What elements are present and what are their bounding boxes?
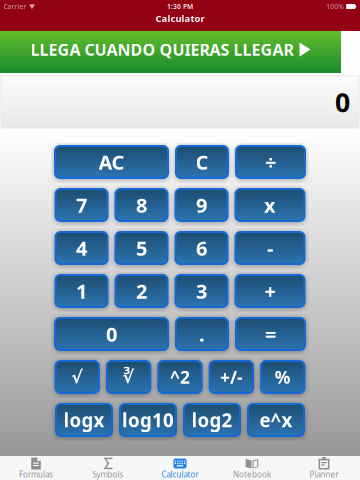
staticText: 4 [76,235,87,261]
button[interactable]: 1 [55,275,107,307]
staticText: 5 [136,235,147,261]
button[interactable]: % [261,361,304,393]
button[interactable]: 4 [55,232,107,264]
staticText: Calculator [155,12,204,25]
staticText: LLEGA CUANDO QUIERAS LLEGAR [30,39,293,60]
button[interactable]: Formulas [0,456,72,480]
staticText: 1:30 PM [167,2,193,11]
button[interactable]: ∛ [107,361,150,393]
staticText: ÷ [265,149,276,175]
button[interactable]: Planner [288,456,360,480]
button[interactable]: 7 [55,189,107,221]
staticText: logx [63,408,104,432]
staticText: 9 [196,192,207,218]
staticText: 100% [326,2,344,11]
staticText: 0 [106,321,117,347]
staticText: 8 [136,192,147,218]
button[interactable]: C [176,146,228,178]
button[interactable]: ÷ [236,146,305,178]
button[interactable]: - [235,232,304,264]
staticText: log2 [191,408,232,432]
button[interactable]: 2 [115,275,167,307]
button[interactable]: + [235,275,304,307]
staticText: AC [98,149,124,175]
staticText: Carrier [3,2,26,11]
staticText: 6 [196,235,207,261]
staticText: C [195,149,208,175]
button[interactable]: 9 [175,189,227,221]
button[interactable]: Notebook [216,456,288,480]
staticText: + [264,278,275,304]
staticText: Symbols [92,469,123,480]
staticText: e^x [259,408,292,432]
button[interactable]: LLEGA CUANDO QUIERAS LLEGAR [0,31,341,73]
staticText: +/- [220,365,243,388]
staticText: ^2 [170,365,190,388]
staticText: Notebook [233,469,271,480]
button[interactable]: 5 [115,232,167,264]
button[interactable]: √ [55,361,99,393]
button[interactable]: = [236,318,305,350]
staticText: √ [71,367,83,387]
staticText: 1 [76,278,87,304]
button[interactable]: . [176,318,228,350]
staticText: 2 [136,278,147,304]
button[interactable]: AC [55,146,168,178]
button[interactable]: log2 [184,404,240,436]
staticText: Formulas [19,469,53,480]
button[interactable]: 8 [115,189,167,221]
button[interactable]: +/- [210,361,253,393]
staticText: 3 [196,278,207,304]
staticText: = [265,321,276,347]
staticText: ∛ [123,367,135,387]
button[interactable]: Calculator [144,456,216,480]
button[interactable]: x [235,189,304,221]
button[interactable]: e^x [248,404,304,436]
button[interactable]: 3 [175,275,227,307]
staticText: 7 [76,192,87,218]
staticText: % [275,365,291,388]
button[interactable]: logx [56,404,112,436]
button[interactable]: 0 [55,318,168,350]
button[interactable]: 6 [175,232,227,264]
button[interactable]: ^2 [158,361,202,393]
staticText: - [267,235,273,261]
staticText: . [199,321,205,347]
button[interactable]: Symbols [72,456,144,480]
staticText: x [264,192,276,218]
staticText: log10 [122,408,174,432]
button[interactable]: log10 [120,404,176,436]
staticText: 0 [335,84,350,120]
staticText: Planner [309,469,338,480]
staticText: Calculator [161,469,198,480]
